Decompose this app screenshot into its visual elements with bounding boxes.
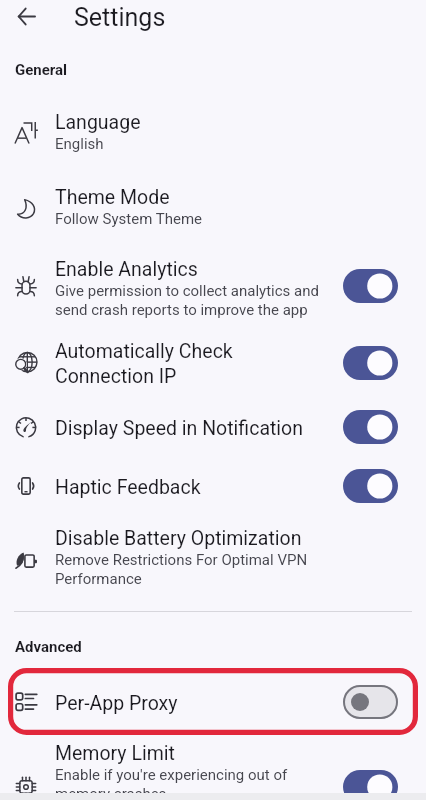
staticText: Language [55, 111, 141, 134]
button[interactable]: Back [7, 0, 45, 35]
button[interactable]: Toggle Haptic Feedback [343, 469, 398, 503]
button[interactable]: Toggle Memory Limit [343, 770, 398, 800]
button[interactable]: Toggle Display Speed in Notification [343, 410, 398, 444]
staticText: Per-App Proxy [55, 692, 178, 715]
staticText: Advanced [15, 638, 82, 656]
staticText: Remove Restrictions For Optimal VPN Perf… [55, 551, 308, 588]
staticText: Enable Analytics [55, 258, 198, 281]
staticText: Memory Limit [55, 742, 175, 765]
staticText: Enable if you're experiencing out of mem… [55, 766, 288, 800]
staticText: Follow System Theme [55, 210, 202, 228]
staticText: Display Speed in Notification [55, 417, 303, 440]
staticText: Give permission to collect analytics and… [55, 282, 319, 319]
button[interactable]: Toggle Per-App Proxy [343, 685, 398, 719]
button[interactable]: Toggle Enable Analytics [343, 269, 398, 303]
button[interactable]: Per-App Proxy highlight [8, 668, 418, 735]
staticText: Theme Mode [55, 186, 170, 209]
staticText: Disable Battery Optimization [55, 527, 302, 550]
staticText: English [55, 135, 104, 153]
staticText: Settings [74, 3, 166, 32]
button[interactable]: Toggle Automatically Check Connection IP [343, 346, 398, 380]
staticText: General [15, 61, 68, 79]
staticText: Haptic Feedback [55, 476, 201, 499]
staticText: Automatically Check Connection IP [55, 340, 233, 388]
